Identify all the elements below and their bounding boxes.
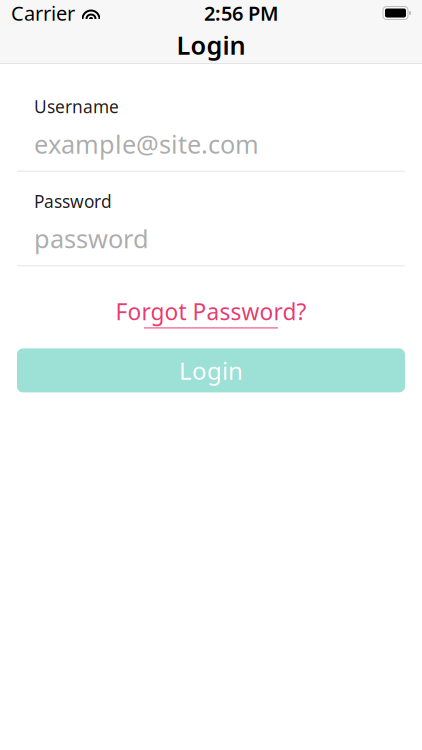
staticText: Password	[34, 190, 112, 213]
staticText: Username	[34, 95, 119, 118]
button[interactable]: Login	[17, 348, 405, 392]
staticText: Carrier	[11, 0, 75, 26]
staticText: Login	[176, 28, 245, 62]
staticText: Forgot Password?	[115, 296, 306, 326]
staticText: example@site.com	[34, 127, 259, 161]
staticText: password	[34, 222, 149, 255]
staticText: 2:56 PM	[204, 0, 279, 26]
button[interactable]: Forgot Password?	[17, 290, 405, 334]
staticText: Login	[179, 354, 243, 386]
